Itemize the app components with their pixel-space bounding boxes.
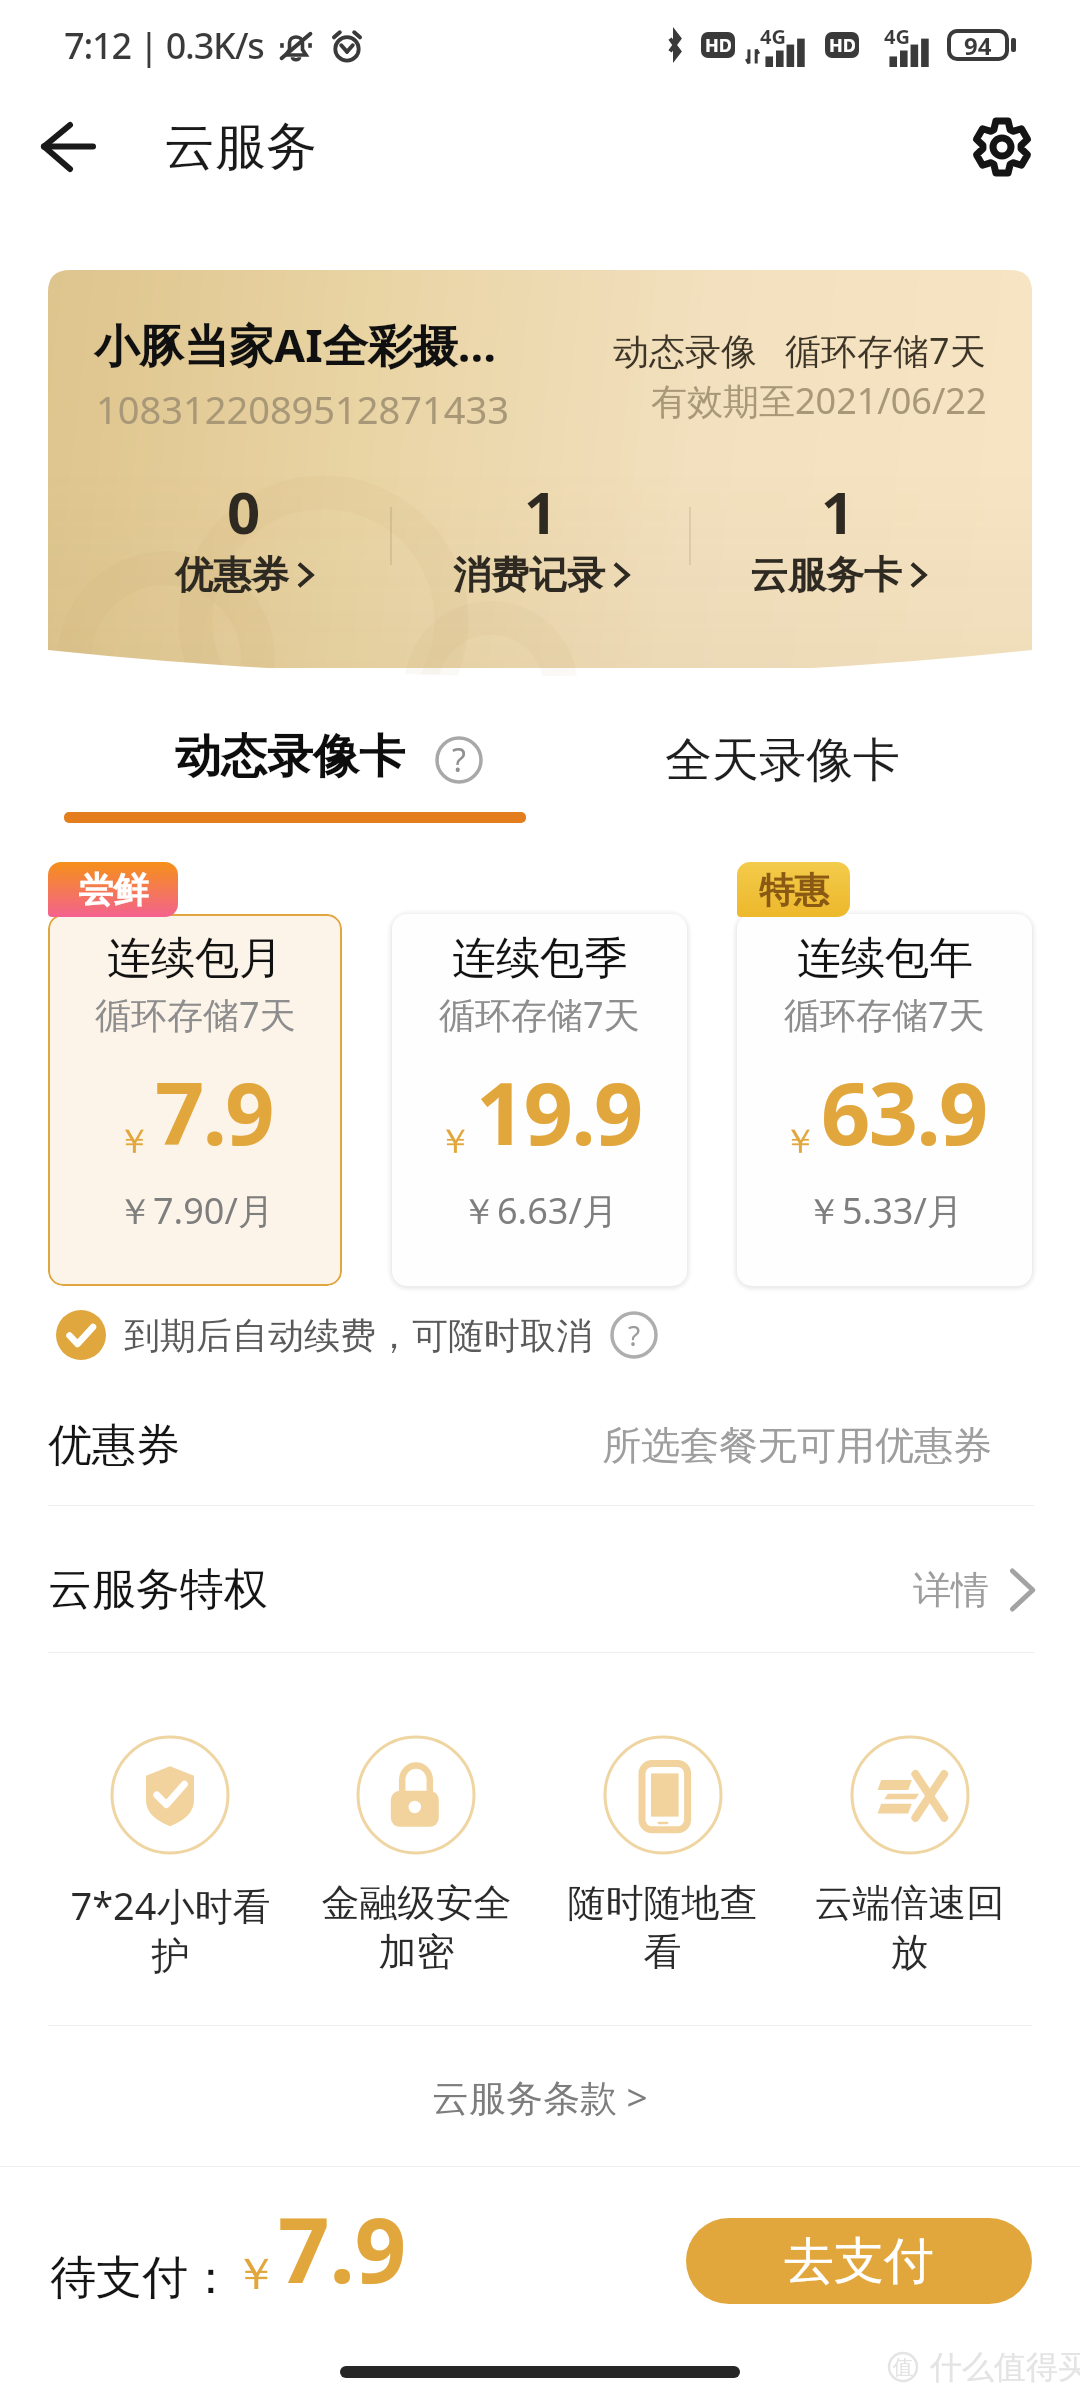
staticText: 云服务	[164, 115, 317, 179]
staticText: HD	[829, 33, 856, 58]
staticText: ￥5.33/月	[806, 1186, 963, 1235]
staticText: 云服务卡	[750, 551, 902, 599]
staticText: 优惠券	[48, 1418, 180, 1473]
staticText: ?	[628, 1316, 641, 1354]
staticText: 7.9	[278, 2187, 407, 2310]
button[interactable]: 0	[98, 472, 390, 599]
staticText: 有效期至2021/06/22	[651, 376, 987, 425]
staticText: HD	[705, 33, 732, 58]
button[interactable]: 云服务特权	[48, 1527, 1034, 1652]
staticText: 4G	[884, 23, 910, 50]
staticText: 1	[821, 472, 855, 551]
staticText: 特惠	[759, 868, 829, 912]
button[interactable]: 云服务条款 >	[0, 2026, 1080, 2166]
staticText: 94	[964, 29, 992, 61]
staticText: 云端倍速回放	[807, 1879, 1012, 1977]
staticText: 63.9	[821, 1053, 987, 1170]
staticText: 什么值得买	[930, 2347, 1080, 2387]
staticText: 尝鲜	[78, 868, 148, 912]
staticText: 连续包年	[797, 931, 973, 986]
button[interactable]: 连续包月	[48, 914, 342, 1286]
staticText: 值	[893, 2355, 913, 2380]
staticText: 去支付	[784, 2230, 934, 2293]
staticText: 小豚当家AI全彩摄…	[94, 314, 497, 375]
staticText: 1	[524, 472, 558, 551]
staticText: 循环存储7天	[784, 990, 985, 1039]
staticText: 详情	[913, 1566, 989, 1614]
staticText: 1083122089512871433	[96, 383, 509, 435]
staticText: 动态录像卡	[175, 728, 405, 786]
staticText: 优惠券	[175, 551, 289, 599]
staticText: ￥	[234, 2247, 278, 2302]
staticText: 消费记录	[453, 551, 605, 599]
button[interactable]: 小豚当家AI全彩摄…	[48, 270, 1032, 668]
staticText: 随时随地查看	[560, 1879, 765, 1977]
staticText: ?	[452, 738, 466, 782]
button[interactable]: 到期后自动续费，可随时取消	[56, 1310, 1080, 1360]
staticText: 待支付：	[50, 2249, 234, 2307]
button[interactable]: 连续包季	[392, 914, 687, 1286]
staticText: ￥7.90/月	[117, 1186, 274, 1235]
button[interactable]: Settings	[962, 107, 1042, 187]
button[interactable]: 全天录像卡	[544, 700, 1080, 850]
staticText: ￥	[438, 1120, 472, 1163]
button[interactable]: 连续包年	[737, 914, 1032, 1286]
staticText: 云服务特权	[48, 1562, 268, 1617]
button[interactable]: 动态录像卡	[0, 700, 544, 850]
staticText: 连续包季	[452, 931, 628, 986]
button[interactable]: 优惠券	[48, 1385, 1034, 1505]
staticText: ￥	[783, 1120, 817, 1163]
button[interactable]: 1	[691, 472, 985, 599]
staticText: 4G	[760, 23, 786, 50]
staticText: 循环存储7天	[439, 990, 640, 1039]
staticText: 金融级安全加密	[314, 1879, 519, 1977]
button[interactable]: Back	[21, 100, 115, 194]
staticText: 7*24小时看护	[68, 1879, 273, 1981]
staticText: 动态录像 循环存储7天	[613, 326, 986, 375]
staticText: 循环存储7天	[95, 990, 296, 1039]
staticText: 7:12 | 0.3K/s	[64, 21, 264, 70]
staticText: ￥6.63/月	[461, 1186, 618, 1235]
staticText: 19.9	[476, 1053, 642, 1170]
staticText: 全天录像卡	[665, 731, 900, 790]
staticText: 7.9	[155, 1053, 274, 1170]
button[interactable]: 去支付	[686, 2218, 1032, 2304]
staticText: ￥	[117, 1120, 151, 1163]
staticText: 到期后自动续费，可随时取消	[124, 1313, 592, 1358]
button[interactable]: 1	[392, 472, 689, 599]
staticText: 连续包月	[107, 931, 283, 986]
staticText: 0	[227, 472, 261, 551]
staticText: 所选套餐无可用优惠券	[602, 1421, 992, 1470]
staticText: 云服务条款 >	[432, 2071, 648, 2122]
